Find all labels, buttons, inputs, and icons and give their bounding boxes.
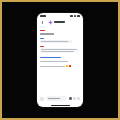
button[interactable]: Voice input <box>69 97 72 100</box>
button[interactable]: Add <box>40 97 44 101</box>
button[interactable] <box>46 96 67 101</box>
button[interactable]: Back <box>40 20 45 25</box>
button[interactable] <box>40 40 72 43</box>
button[interactable]: Assistant <box>47 19 53 25</box>
